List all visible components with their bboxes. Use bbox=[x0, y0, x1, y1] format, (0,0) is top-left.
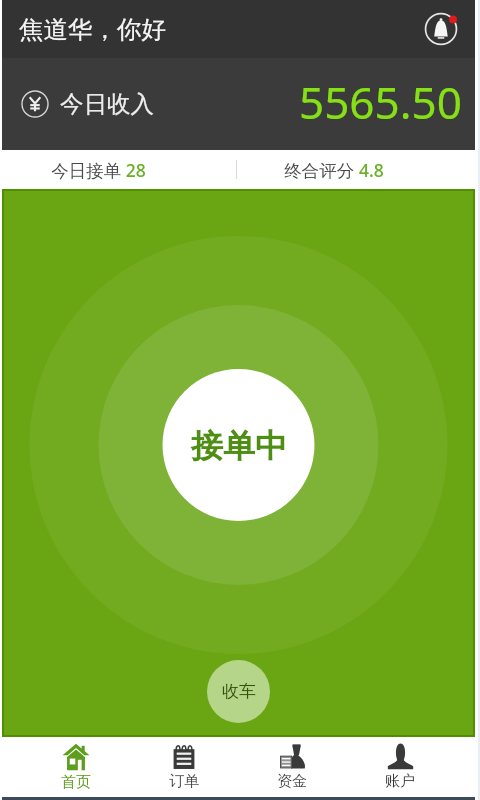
button[interactable]: 接单中 bbox=[163, 369, 315, 521]
button[interactable]: Notifications bbox=[424, 12, 458, 46]
button[interactable]: 首页 bbox=[22, 737, 130, 797]
staticText: 接单中 bbox=[191, 426, 287, 466]
staticText: 今日收入 bbox=[60, 89, 154, 119]
staticText: 收车 bbox=[222, 681, 256, 702]
staticText: 今日接单 28 bbox=[51, 158, 146, 182]
button[interactable]: 今日接单 28 bbox=[28, 150, 168, 189]
button[interactable]: 资金 bbox=[238, 737, 346, 797]
button[interactable]: 账户 bbox=[346, 737, 454, 797]
staticText: 账户 bbox=[385, 772, 415, 791]
staticText: 订单 bbox=[169, 772, 199, 791]
button[interactable]: 订单 bbox=[130, 737, 238, 797]
staticText: 5565.50 bbox=[299, 72, 462, 132]
staticText: 资金 bbox=[277, 772, 307, 791]
staticText: 焦道华，你好 bbox=[19, 14, 166, 45]
staticText: 终合评分 4.8 bbox=[284, 158, 384, 182]
staticText: 首页 bbox=[61, 773, 91, 792]
button[interactable]: 收车 bbox=[207, 660, 270, 723]
button[interactable]: 终合评分 4.8 bbox=[264, 150, 404, 189]
